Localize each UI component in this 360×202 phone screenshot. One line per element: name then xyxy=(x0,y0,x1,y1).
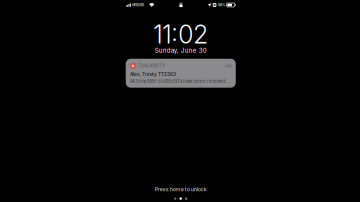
staticText: Sunday, June 30 xyxy=(155,47,207,54)
staticText: 11:02 xyxy=(153,19,208,49)
staticText: now xyxy=(224,63,231,68)
staticText: TRACKNOTY xyxy=(138,63,165,68)
staticText: All Sony XBR-55X850D's have been receive… xyxy=(130,78,226,84)
button[interactable]: Lock Screen xyxy=(179,197,182,200)
staticText: Press home to unlock xyxy=(155,186,207,192)
button[interactable]: TRACKNOTY xyxy=(126,59,236,88)
staticText: 58% xyxy=(218,3,226,7)
staticText: Alex, Trinity TT2363 xyxy=(130,71,176,77)
staticText: Verizon xyxy=(132,3,144,7)
button[interactable]: Camera xyxy=(185,197,187,200)
button[interactable]: Today View xyxy=(174,197,176,200)
